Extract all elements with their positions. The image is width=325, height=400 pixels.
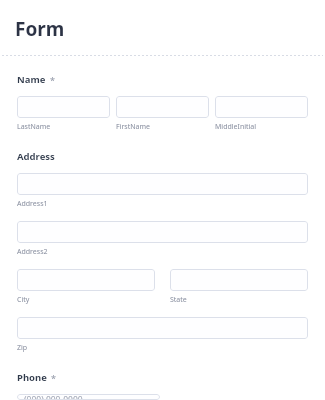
staticText: LastName bbox=[17, 122, 51, 132]
staticText: City bbox=[17, 295, 30, 305]
button[interactable]: MiddleInitial bbox=[215, 96, 308, 118]
staticText: State bbox=[170, 295, 187, 305]
button[interactable]: Phone number bbox=[17, 394, 160, 400]
button[interactable]: Address1 bbox=[17, 173, 308, 195]
button[interactable]: FirstName bbox=[116, 96, 209, 118]
button[interactable]: City bbox=[17, 269, 155, 291]
staticText: Address1 bbox=[17, 199, 48, 209]
staticText: Address2 bbox=[17, 247, 48, 257]
staticText: Phone bbox=[17, 371, 47, 384]
staticText: Form bbox=[15, 16, 65, 42]
staticText: * bbox=[50, 74, 55, 86]
staticText: Address bbox=[17, 150, 55, 163]
staticText: Name bbox=[17, 73, 46, 86]
button[interactable]: LastName bbox=[17, 96, 110, 118]
button[interactable]: Address2 bbox=[17, 221, 308, 243]
staticText: * bbox=[51, 372, 56, 384]
staticText: (000) 000-0000 bbox=[24, 394, 83, 400]
staticText: Zip bbox=[17, 343, 28, 353]
staticText: MiddleInitial bbox=[215, 122, 257, 132]
button[interactable]: Zip bbox=[17, 317, 308, 339]
button[interactable]: State bbox=[170, 269, 308, 291]
staticText: FirstName bbox=[116, 122, 150, 132]
